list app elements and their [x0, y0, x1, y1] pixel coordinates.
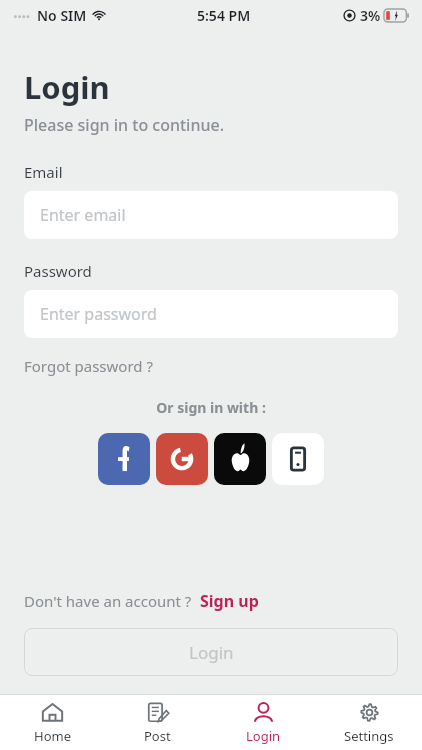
- staticText: Email: [24, 162, 63, 182]
- staticText: Enter email: [40, 204, 126, 226]
- staticText: Or sign in with :: [0, 398, 422, 417]
- staticText: Don't have an account ?: [24, 591, 192, 611]
- button[interactable]: Forgot password ?: [24, 356, 153, 376]
- staticText: Sign up: [200, 590, 259, 612]
- button[interactable]: Settings: [316, 695, 422, 750]
- button[interactable]: Home: [0, 695, 105, 750]
- staticText: Home: [34, 727, 71, 745]
- button[interactable]: Login: [24, 628, 398, 676]
- button[interactable]: Enter password: [24, 290, 398, 338]
- staticText: Login: [246, 727, 281, 745]
- staticText: Password: [24, 261, 92, 281]
- button[interactable]: Sign in with Facebook: [98, 433, 150, 485]
- staticText: Please sign in to continue.: [24, 114, 225, 136]
- staticText: Post: [144, 727, 171, 745]
- button[interactable]: Sign in with phone: [272, 433, 324, 485]
- staticText: Login: [24, 66, 110, 108]
- staticText: Enter password: [40, 303, 157, 325]
- button[interactable]: Sign in with Apple: [214, 433, 266, 485]
- staticText: Login: [189, 641, 234, 664]
- button[interactable]: Enter email: [24, 191, 398, 239]
- staticText: 5:54 PM: [197, 6, 251, 25]
- button[interactable]: Login: [210, 695, 316, 750]
- button[interactable]: Sign in with Google: [156, 433, 208, 485]
- button[interactable]: Post: [105, 695, 210, 750]
- staticText: No SIM: [37, 6, 87, 25]
- staticText: 3%: [360, 6, 381, 25]
- staticText: Settings: [344, 727, 394, 745]
- button[interactable]: Sign up: [200, 590, 259, 612]
- staticText: Forgot password ?: [24, 356, 153, 376]
